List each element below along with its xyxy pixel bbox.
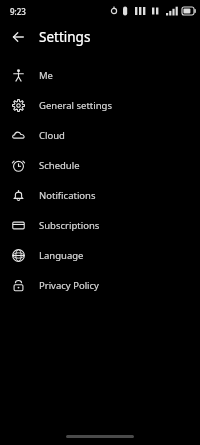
- button[interactable]: General settings: [0, 90, 200, 120]
- button[interactable]: Notifications: [0, 180, 200, 210]
- button[interactable]: Cloud: [0, 120, 200, 150]
- staticText: Notifications: [39, 189, 96, 202]
- button[interactable]: Back: [6, 25, 30, 49]
- staticText: Settings: [39, 28, 91, 46]
- staticText: Language: [39, 249, 84, 262]
- button[interactable]: Language: [0, 240, 200, 270]
- staticText: Privacy Policy: [39, 279, 99, 292]
- button[interactable]: Subscriptions: [0, 210, 200, 240]
- button[interactable]: Privacy Policy: [0, 270, 200, 300]
- staticText: General settings: [39, 99, 112, 112]
- staticText: Schedule: [39, 159, 80, 172]
- staticText: 9:23: [10, 6, 26, 17]
- button[interactable]: Schedule: [0, 150, 200, 180]
- staticText: Me: [39, 69, 53, 82]
- staticText: Cloud: [39, 129, 65, 142]
- button[interactable]: Me: [0, 60, 200, 90]
- staticText: Subscriptions: [39, 219, 100, 232]
